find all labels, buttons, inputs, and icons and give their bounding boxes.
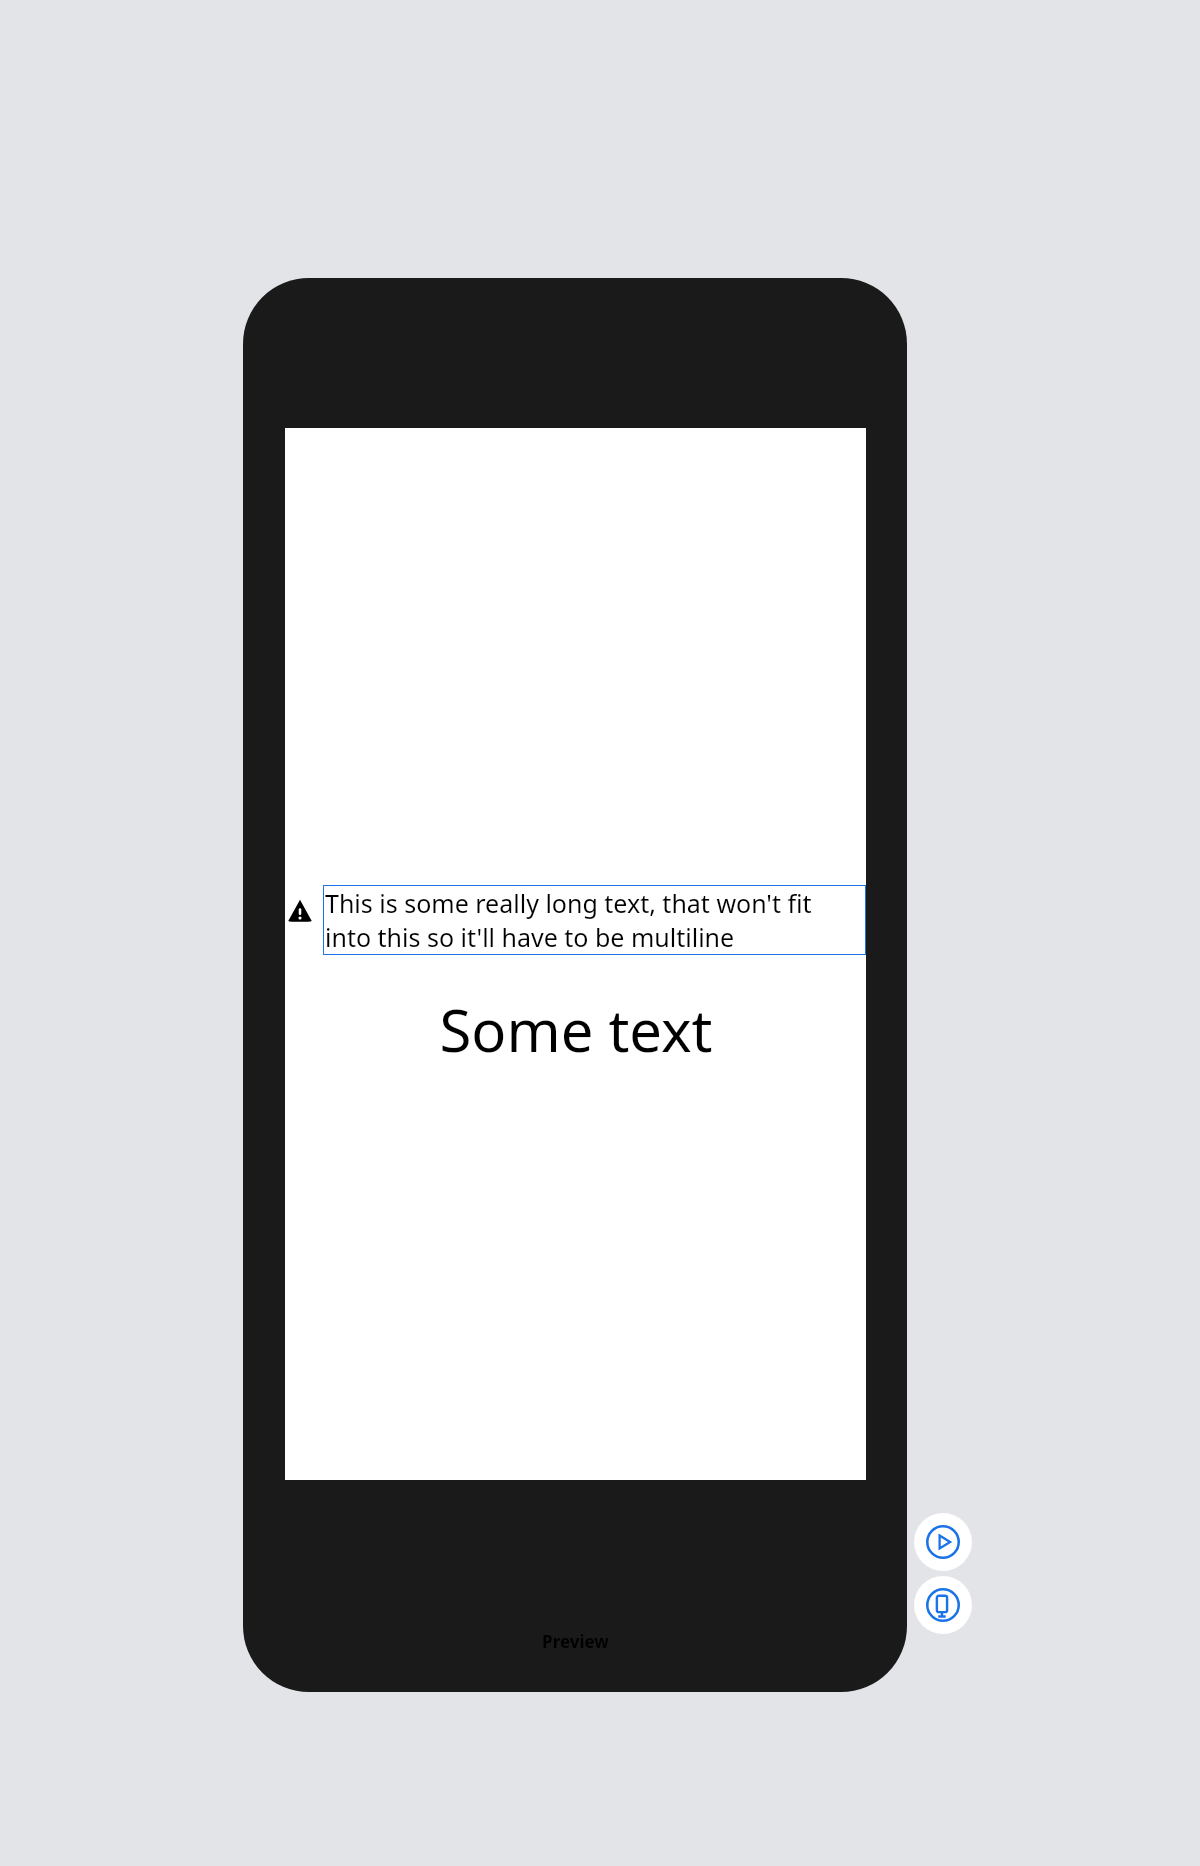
staticText: Preview xyxy=(542,1630,609,1653)
staticText: Some text xyxy=(439,990,713,1069)
button[interactable]: Interactive preview xyxy=(914,1576,972,1634)
button[interactable]: Run preview xyxy=(914,1513,972,1571)
button[interactable]: Warning xyxy=(285,896,315,926)
staticText: This is some really long text, that won'… xyxy=(325,886,864,954)
button[interactable]: This is some really long text, that won'… xyxy=(323,885,866,955)
